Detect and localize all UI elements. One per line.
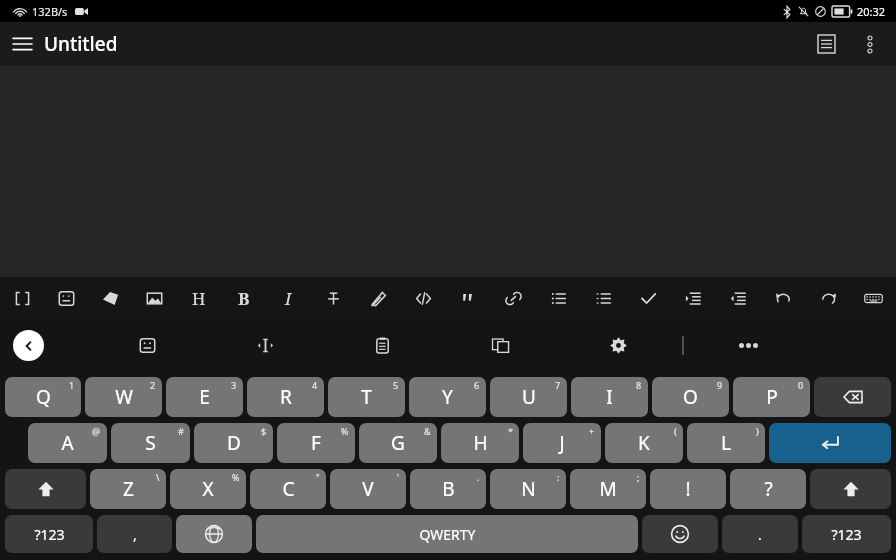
staticText: H xyxy=(192,287,206,310)
button[interactable]: O xyxy=(652,377,729,417)
staticText: Y xyxy=(442,384,453,410)
staticText: * xyxy=(508,425,513,437)
button[interactable]: brackets xyxy=(0,277,44,320)
staticText: 3 xyxy=(231,379,237,391)
staticText: 0 xyxy=(798,379,804,391)
button[interactable]: T xyxy=(328,377,405,417)
button[interactable]: Menu xyxy=(0,22,44,66)
button[interactable]: L xyxy=(687,423,765,463)
button[interactable]: ?123 xyxy=(802,515,891,553)
button[interactable]: H xyxy=(441,423,519,463)
staticText: C xyxy=(282,476,295,502)
button[interactable]: D xyxy=(194,423,273,463)
button[interactable]: P xyxy=(733,377,810,417)
staticText: T xyxy=(361,384,372,410)
button[interactable]: ?123 xyxy=(5,515,93,553)
button[interactable]: redo xyxy=(806,277,851,320)
staticText: ) xyxy=(756,425,759,437)
button[interactable]: code xyxy=(401,277,446,320)
button[interactable]: R xyxy=(247,377,324,417)
button[interactable]: B xyxy=(410,469,486,509)
button[interactable]: pen xyxy=(356,277,401,320)
staticText: 132B/s xyxy=(32,4,68,19)
button[interactable]: More options xyxy=(848,22,892,66)
button[interactable]: QWERTY xyxy=(256,515,638,553)
button[interactable]: Switch language xyxy=(176,515,252,553)
button[interactable]: M xyxy=(570,469,646,509)
staticText: Z xyxy=(123,476,134,502)
button[interactable]: More xyxy=(726,323,770,367)
button[interactable]: I xyxy=(571,377,648,417)
staticText: H xyxy=(473,430,488,456)
button[interactable]: V xyxy=(330,469,406,509)
button[interactable]: image xyxy=(132,277,176,320)
button[interactable]: Translate xyxy=(478,323,522,367)
staticText: 20:32 xyxy=(857,4,886,19)
button[interactable]: Clipboard xyxy=(360,323,404,367)
button[interactable]: N xyxy=(490,469,566,509)
staticText: B xyxy=(442,476,455,502)
staticText: ( xyxy=(674,425,677,437)
button[interactable]: . xyxy=(722,515,798,553)
button[interactable]: Y xyxy=(409,377,486,417)
button[interactable]: link xyxy=(491,277,536,320)
button[interactable]: Backspace xyxy=(814,377,891,417)
button[interactable]: Expand toolbar xyxy=(13,330,44,361)
button[interactable]: Z xyxy=(90,469,166,509)
button[interactable]: X xyxy=(170,469,246,509)
button[interactable]: indent xyxy=(671,277,716,320)
button[interactable]: S xyxy=(311,277,356,320)
button[interactable]: K xyxy=(605,423,683,463)
staticText: R xyxy=(280,384,292,410)
staticText: \ xyxy=(156,471,160,483)
button[interactable]: undo xyxy=(761,277,806,320)
staticText: I xyxy=(285,287,292,310)
button[interactable]: sticker xyxy=(44,277,88,320)
staticText: + xyxy=(589,425,595,437)
button[interactable]: , xyxy=(97,515,172,553)
button[interactable]: ? xyxy=(730,469,806,509)
button[interactable]: Emoji xyxy=(642,515,718,553)
staticText: S xyxy=(145,430,156,456)
staticText: : xyxy=(557,471,560,483)
button[interactable]: ! xyxy=(650,469,726,509)
button[interactable]: W xyxy=(85,377,162,417)
button[interactable]: F xyxy=(277,423,355,463)
button[interactable]: E xyxy=(166,377,243,417)
staticText: N xyxy=(521,476,536,502)
staticText: I xyxy=(606,384,613,410)
button[interactable]: Shift xyxy=(810,469,891,509)
button[interactable]: Text editing xyxy=(243,323,287,367)
button[interactable]: Q xyxy=(5,377,81,417)
button[interactable]: Note list xyxy=(804,22,848,66)
button[interactable]: U xyxy=(490,377,567,417)
button[interactable]: keyboard xyxy=(851,277,896,320)
button[interactable]: outdent xyxy=(716,277,761,320)
button[interactable]: I xyxy=(266,277,311,320)
button[interactable]: tag xyxy=(88,277,132,320)
staticText: ?123 xyxy=(831,525,862,544)
staticText: . xyxy=(758,525,762,544)
staticText: 1 xyxy=(69,379,75,391)
button[interactable]: S xyxy=(111,423,190,463)
button[interactable]: B xyxy=(221,277,266,320)
staticText: 4 xyxy=(312,379,318,391)
button[interactable]: bullet xyxy=(536,277,581,320)
button[interactable]: Enter xyxy=(769,423,891,463)
staticText: $ xyxy=(261,425,267,437)
button[interactable]: quote xyxy=(446,277,491,320)
button[interactable]: Stickers xyxy=(125,323,169,367)
staticText: QWERTY xyxy=(419,525,476,544)
button[interactable]: C xyxy=(250,469,326,509)
staticText: B xyxy=(238,287,250,310)
staticText: U xyxy=(522,384,536,410)
button[interactable]: check xyxy=(626,277,671,320)
button[interactable]: H xyxy=(176,277,221,320)
button[interactable]: Settings xyxy=(596,323,640,367)
button[interactable]: Shift xyxy=(5,469,86,509)
button[interactable]: number xyxy=(581,277,626,320)
button[interactable]: A xyxy=(28,423,107,463)
button[interactable]: G xyxy=(359,423,437,463)
button[interactable]: J xyxy=(523,423,601,463)
